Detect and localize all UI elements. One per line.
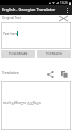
staticText: 13:26: [60, 1, 68, 5]
staticText: TO ENGLISH: [46, 52, 62, 56]
staticText: English - Georgian Translator: [2, 7, 56, 12]
staticText: TO GEORGIAN: [9, 52, 28, 56]
button[interactable]: Copy: [59, 69, 70, 80]
staticText: Original Text: [2, 16, 21, 20]
button[interactable]: TO ENGLISH: [37, 50, 71, 58]
button[interactable]: Share: [45, 69, 56, 80]
staticText: თარგმნილი ტექსტი: [3, 100, 41, 105]
staticText: Translation: [2, 71, 19, 75]
staticText: Text here: [3, 31, 18, 36]
button[interactable]: Clear text: [57, 15, 70, 22]
button[interactable]: More options: [62, 5, 72, 15]
button[interactable]: TO GEORGIAN: [1, 50, 35, 58]
